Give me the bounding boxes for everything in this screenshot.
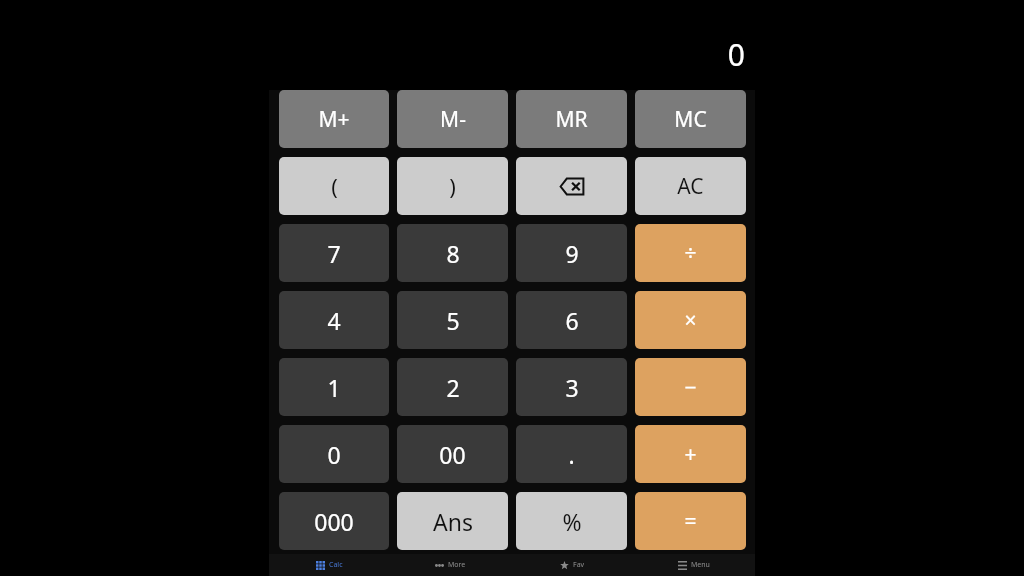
button[interactable]: 6 bbox=[516, 291, 627, 349]
staticText: More bbox=[448, 560, 466, 570]
button[interactable]: + bbox=[635, 425, 746, 483]
staticText: AC bbox=[677, 172, 704, 201]
button[interactable]: % bbox=[516, 492, 627, 550]
staticText: Calc bbox=[329, 560, 343, 570]
button[interactable]: 2 bbox=[397, 358, 508, 416]
button[interactable]: 000 bbox=[279, 492, 389, 550]
staticText: ( bbox=[331, 171, 338, 201]
button[interactable]: AC bbox=[635, 157, 746, 215]
staticText: 0 bbox=[327, 439, 341, 470]
button[interactable]: 5 bbox=[397, 291, 508, 349]
staticText: 000 bbox=[314, 506, 354, 537]
button[interactable]: 7 bbox=[279, 224, 389, 282]
button[interactable]: M+ bbox=[279, 90, 389, 148]
button[interactable]: . bbox=[516, 425, 627, 483]
staticText: − bbox=[684, 373, 697, 402]
button[interactable]: 9 bbox=[516, 224, 627, 282]
button[interactable]: Calc bbox=[269, 554, 390, 576]
staticText: . bbox=[568, 439, 575, 470]
staticText: 0 bbox=[727, 34, 745, 75]
button[interactable]: MC bbox=[635, 90, 746, 148]
button[interactable]: ÷ bbox=[635, 224, 746, 282]
staticText: 4 bbox=[327, 305, 341, 336]
button[interactable]: MR bbox=[516, 90, 627, 148]
staticText: 00 bbox=[439, 439, 466, 470]
button[interactable]: 3 bbox=[516, 358, 627, 416]
staticText: Menu bbox=[691, 560, 710, 570]
staticText: % bbox=[562, 506, 582, 537]
button[interactable]: × bbox=[635, 291, 746, 349]
button[interactable]: 4 bbox=[279, 291, 389, 349]
staticText: 3 bbox=[565, 372, 579, 403]
button[interactable]: Menu bbox=[633, 554, 755, 576]
staticText: M- bbox=[440, 105, 466, 134]
button[interactable]: ) bbox=[397, 157, 508, 215]
staticText: ÷ bbox=[684, 239, 697, 268]
staticText: 7 bbox=[327, 238, 341, 269]
staticText: 6 bbox=[565, 305, 579, 336]
staticText: MR bbox=[555, 105, 588, 134]
button[interactable]: M- bbox=[397, 90, 508, 148]
staticText: ) bbox=[449, 171, 456, 201]
staticText: MC bbox=[674, 105, 707, 134]
staticText: 5 bbox=[446, 305, 460, 336]
button[interactable]: Fav bbox=[511, 554, 633, 576]
button[interactable]: Backspace bbox=[516, 157, 627, 215]
staticText: 1 bbox=[327, 372, 341, 403]
button[interactable]: 1 bbox=[279, 358, 389, 416]
button[interactable]: 00 bbox=[397, 425, 508, 483]
staticText: 2 bbox=[446, 372, 460, 403]
button[interactable]: Ans bbox=[397, 492, 508, 550]
staticText: 8 bbox=[446, 238, 460, 269]
staticText: M+ bbox=[318, 105, 350, 134]
button[interactable]: = bbox=[635, 492, 746, 550]
staticText: 9 bbox=[565, 238, 579, 269]
button[interactable]: − bbox=[635, 358, 746, 416]
staticText: Ans bbox=[433, 506, 473, 537]
button[interactable]: ( bbox=[279, 157, 389, 215]
staticText: = bbox=[684, 507, 697, 536]
staticText: + bbox=[684, 440, 697, 469]
staticText: × bbox=[684, 306, 697, 335]
button[interactable]: More bbox=[390, 554, 511, 576]
staticText: Fav bbox=[573, 560, 585, 570]
button[interactable]: 0 bbox=[279, 425, 389, 483]
button[interactable]: 8 bbox=[397, 224, 508, 282]
